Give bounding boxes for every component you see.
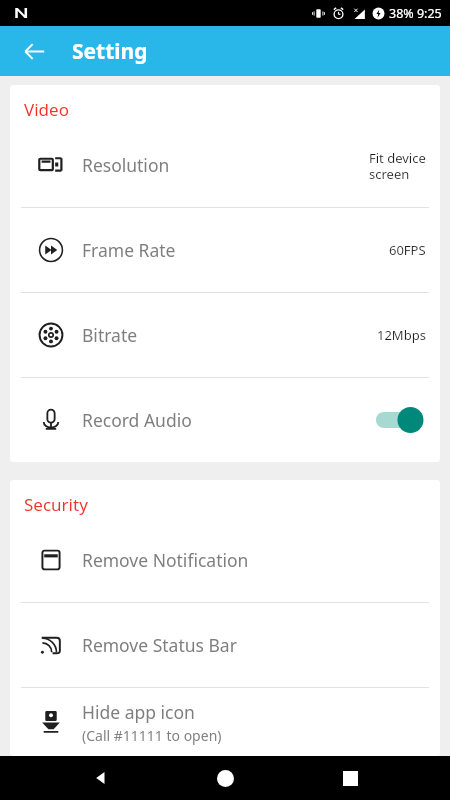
staticText: Record Audio (82, 408, 192, 432)
button[interactable]: Resolution (10, 123, 440, 207)
button[interactable]: Back (77, 756, 125, 800)
button[interactable]: Recent apps (326, 756, 374, 800)
staticText: Security (24, 493, 88, 516)
staticText: 38% 9:25 (389, 5, 442, 22)
button[interactable]: Frame Rate (10, 208, 440, 292)
button[interactable]: Back (10, 27, 58, 75)
staticText: Bitrate (82, 323, 138, 347)
staticText: Video (24, 98, 69, 121)
staticText: Frame Rate (82, 238, 176, 262)
staticText: Hide app icon (82, 700, 195, 724)
staticText: Remove Notification (82, 548, 249, 572)
button[interactable]: Record Audio toggle (370, 398, 426, 442)
staticText: Resolution (82, 153, 170, 177)
button[interactable]: Remove Notification (10, 518, 440, 602)
button[interactable]: Bitrate (10, 293, 440, 377)
button[interactable]: Remove Status Bar (10, 603, 440, 687)
staticText: 12Mbps (377, 326, 426, 344)
staticText: Setting (72, 37, 148, 66)
button[interactable]: Record Audio (10, 378, 440, 462)
staticText: Fit device screen (369, 149, 426, 182)
button[interactable]: Hide app icon (10, 688, 440, 756)
staticText: (Call #11111 to open) (82, 726, 222, 745)
button[interactable]: Home (201, 756, 249, 800)
staticText: Remove Status Bar (82, 633, 237, 657)
staticText: 60FPS (389, 241, 426, 259)
